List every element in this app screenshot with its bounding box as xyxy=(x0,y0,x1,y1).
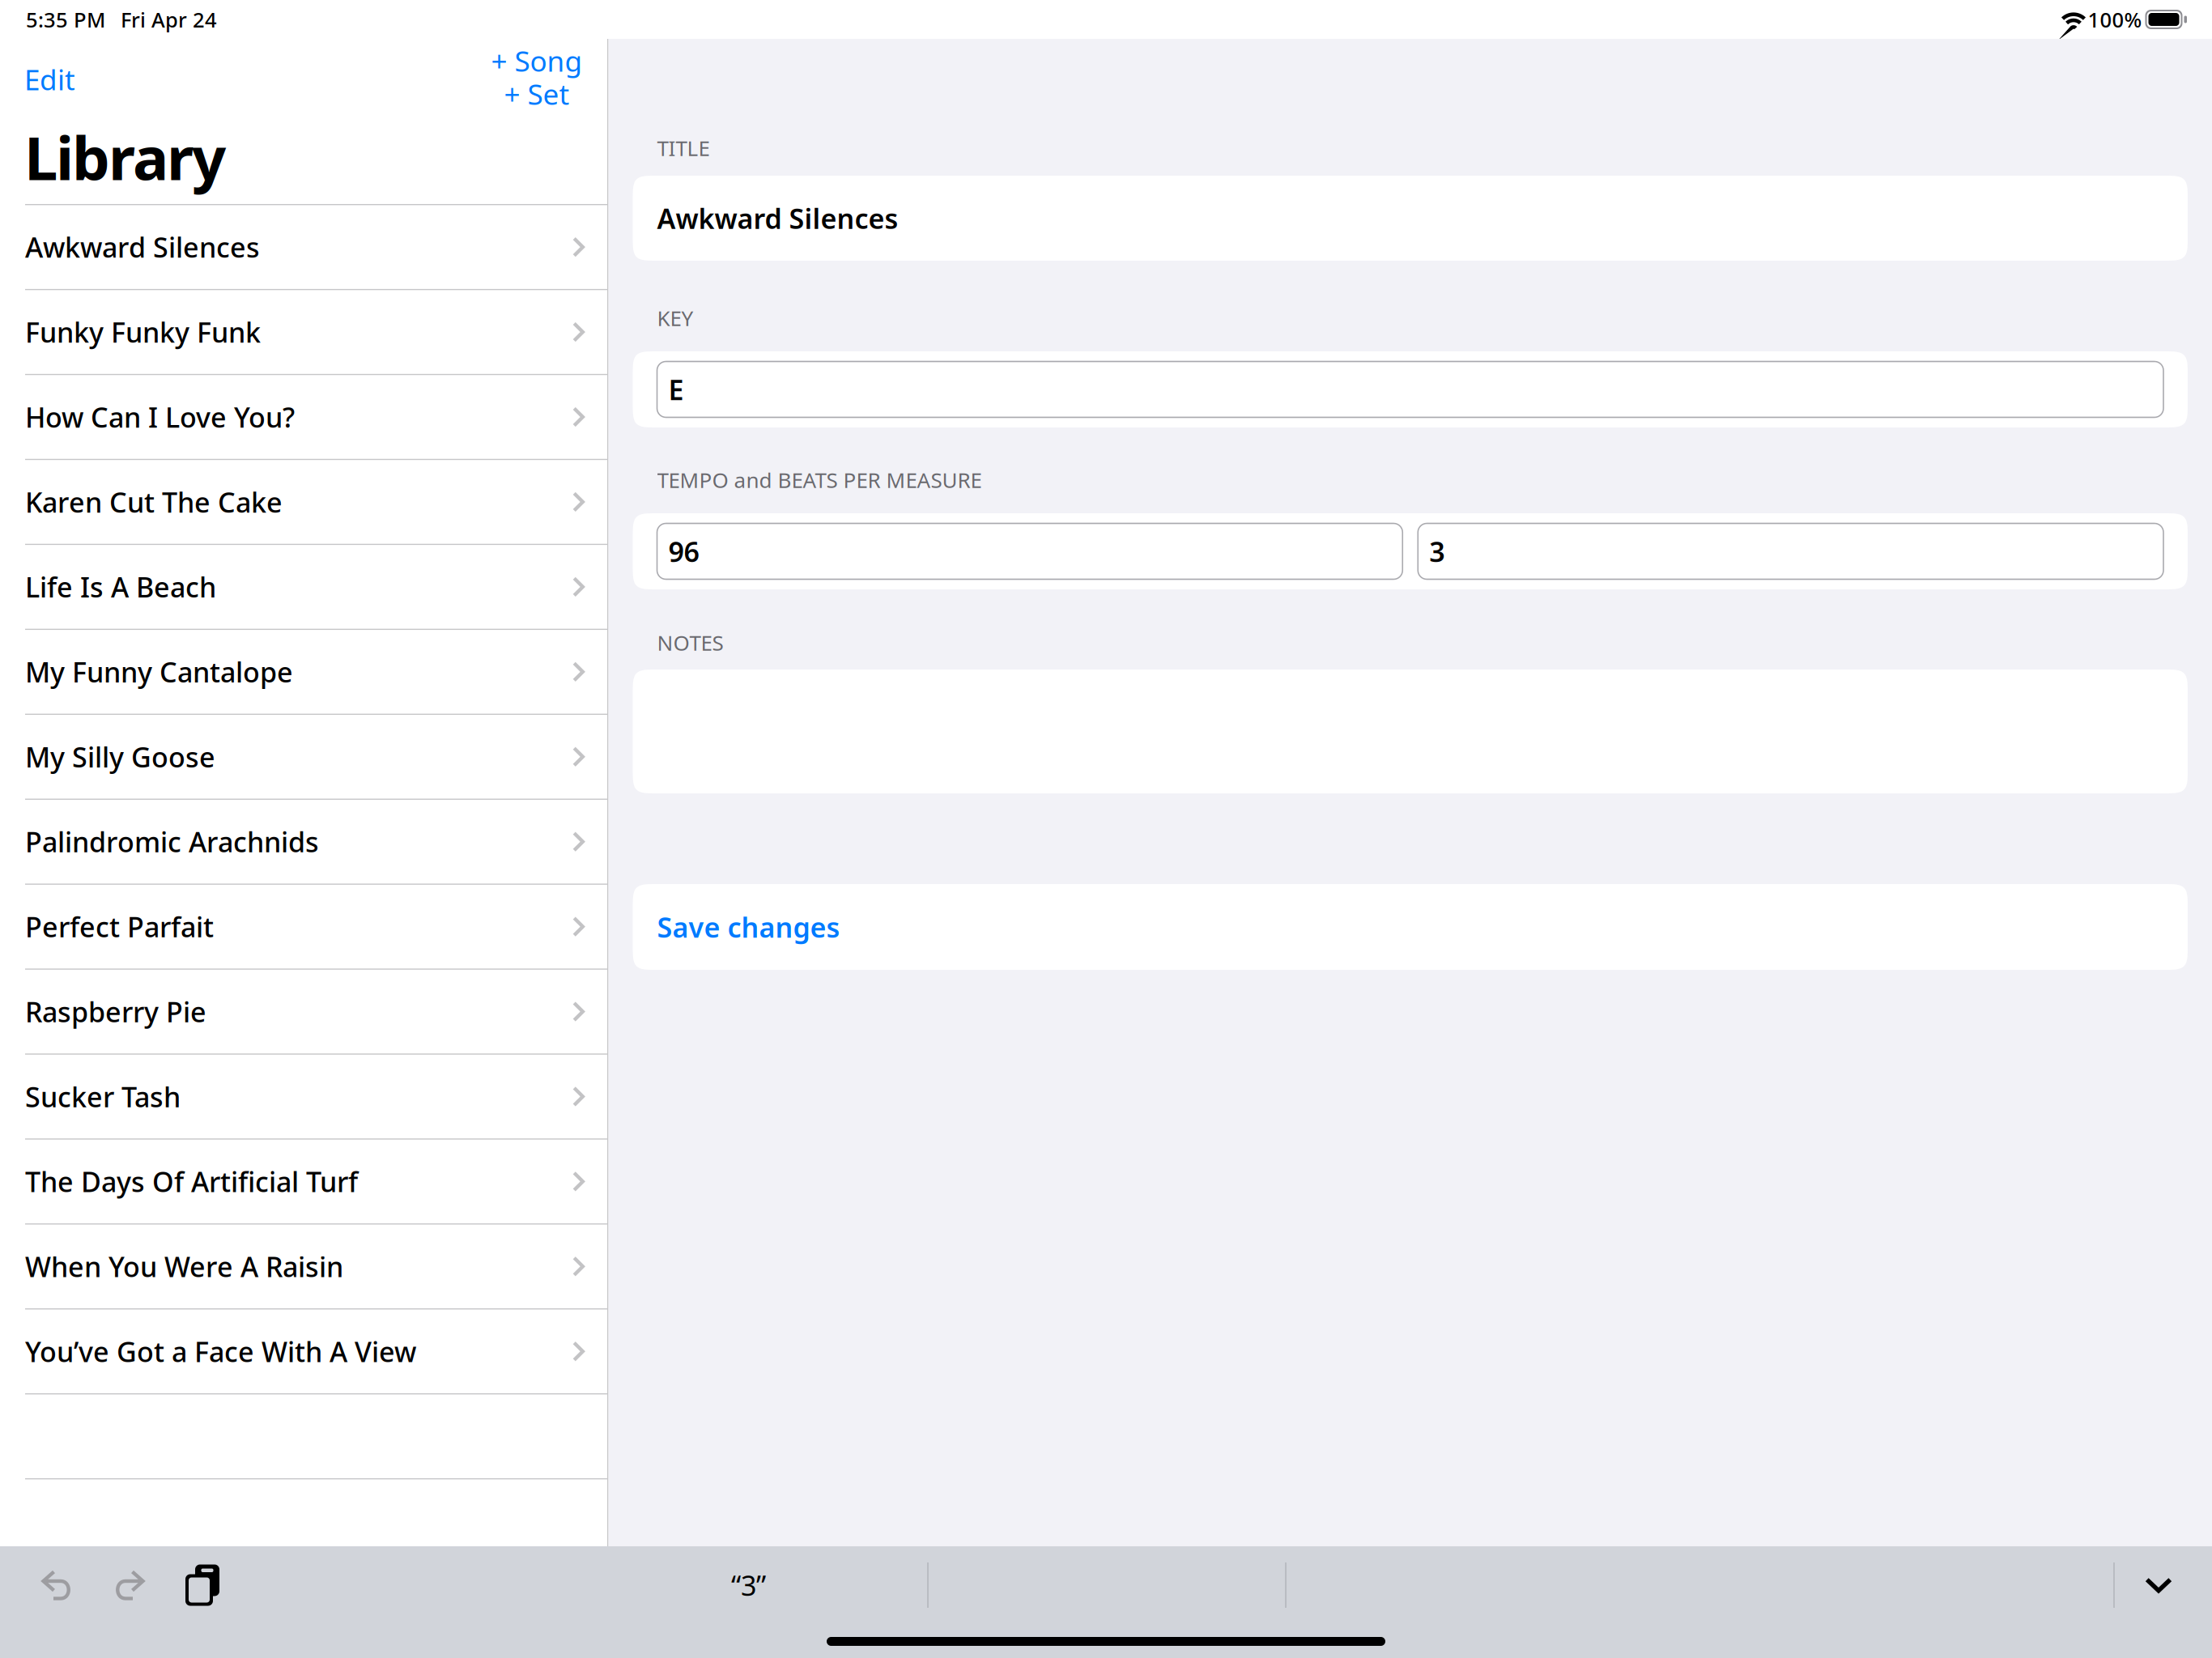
button[interactable]: When You Were A Raisin xyxy=(0,1225,607,1309)
button[interactable]: Funky Funky Funk xyxy=(0,290,607,375)
staticText: Palindromic Arachnids xyxy=(25,823,319,860)
button[interactable]: How Can I Love You? xyxy=(0,375,607,460)
staticText: 3 xyxy=(1429,533,1445,570)
staticText: Fri Apr 24 xyxy=(121,6,217,33)
staticText: 96 xyxy=(668,533,699,570)
staticText: Save changes xyxy=(657,909,840,945)
staticText: Awkward Silences xyxy=(657,200,898,236)
staticText: When You Were A Raisin xyxy=(25,1248,343,1285)
button[interactable]: Paste xyxy=(166,1546,239,1624)
button[interactable]: Awkward Silences xyxy=(0,205,607,290)
button[interactable]: + Set xyxy=(472,77,602,111)
staticText: TEMPO and BEATS PER MEASURE xyxy=(657,466,982,494)
button[interactable]: My Funny Cantalope xyxy=(0,630,607,715)
button[interactable]: Sucker Tash xyxy=(0,1055,607,1140)
button[interactable]: Save changes xyxy=(633,884,2188,970)
button[interactable]: Karen Cut The Cake xyxy=(0,460,607,545)
staticText: My Funny Cantalope xyxy=(25,653,293,690)
staticText: You’ve Got a Face With A View xyxy=(25,1333,416,1370)
staticText: My Silly Goose xyxy=(25,738,215,775)
staticText: NOTES xyxy=(657,629,723,657)
staticText: How Can I Love You? xyxy=(25,399,295,435)
staticText: TITLE xyxy=(657,134,710,162)
staticText: Raspberry Pie xyxy=(25,993,206,1030)
staticText: Sucker Tash xyxy=(25,1078,181,1115)
button[interactable]: Raspberry Pie xyxy=(0,970,607,1055)
staticText: Karen Cut The Cake xyxy=(25,484,283,520)
button[interactable]: Life Is A Beach xyxy=(0,545,607,630)
button[interactable]: Redo xyxy=(93,1546,166,1624)
staticText: 5:35 PM xyxy=(26,6,105,33)
staticText: E xyxy=(668,371,684,408)
staticText: Life Is A Beach xyxy=(25,569,216,605)
staticText: Awkward Silences xyxy=(25,229,260,265)
staticText: Edit xyxy=(24,61,75,98)
button[interactable]: Undo xyxy=(20,1546,93,1624)
staticText: The Days Of Artificial Turf xyxy=(25,1163,358,1200)
staticText: Perfect Parfait xyxy=(25,908,214,945)
staticText: KEY xyxy=(657,304,693,332)
button[interactable]: You’ve Got a Face With A View xyxy=(0,1309,607,1394)
button[interactable]: Palindromic Arachnids xyxy=(0,800,607,885)
staticText: 100% xyxy=(2088,6,2142,33)
staticText: “3” xyxy=(731,1567,766,1603)
button[interactable]: “3” xyxy=(465,1546,1032,1624)
staticText: + Song xyxy=(491,42,583,80)
button[interactable]: Hide keyboard xyxy=(2115,1546,2202,1624)
button[interactable]: Perfect Parfait xyxy=(0,885,607,970)
staticText: Funky Funky Funk xyxy=(25,314,261,350)
button[interactable]: + Song xyxy=(472,44,602,77)
button[interactable]: My Silly Goose xyxy=(0,715,607,800)
staticText: + Set xyxy=(504,75,570,113)
staticText: Library xyxy=(24,117,226,197)
button[interactable]: The Days Of Artificial Turf xyxy=(0,1140,607,1224)
button[interactable]: Edit xyxy=(0,39,186,100)
